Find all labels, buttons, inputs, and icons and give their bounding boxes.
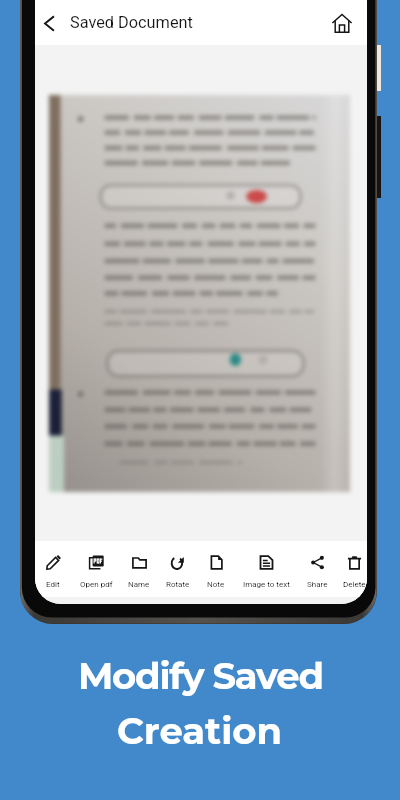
staticText: Share <box>307 580 328 589</box>
button[interactable]: Name <box>119 541 159 597</box>
staticText: Edit <box>46 580 60 589</box>
staticText: Note <box>207 580 225 589</box>
staticText: Delete <box>343 580 366 589</box>
staticText: Open pdf <box>80 580 113 589</box>
staticText: Creation <box>117 708 283 753</box>
button[interactable]: Image to text <box>236 541 296 597</box>
button[interactable]: Note <box>198 541 234 597</box>
staticText: Name <box>128 580 150 589</box>
staticText: Rotate <box>166 580 190 589</box>
staticText: Saved Document <box>70 13 193 32</box>
staticText: Image to text <box>243 580 290 589</box>
staticText: Modify Saved <box>78 653 323 698</box>
button[interactable]: Share <box>297 541 337 597</box>
button[interactable]: Rotate <box>157 541 199 597</box>
button[interactable]: Back <box>35 5 67 41</box>
button[interactable]: Edit <box>36 541 70 597</box>
button[interactable]: Delete <box>333 541 367 597</box>
button[interactable]: Home <box>324 5 360 41</box>
button[interactable]: Open pdf <box>70 541 122 597</box>
